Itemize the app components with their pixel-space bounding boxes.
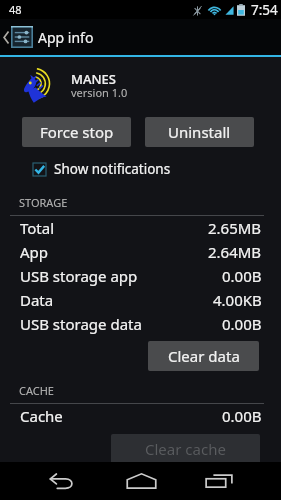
button[interactable]: Back <box>0 19 281 55</box>
staticText: Cache <box>20 406 63 426</box>
staticText: App info <box>38 28 94 47</box>
staticText: Force stop <box>40 122 114 142</box>
button[interactable]: App <box>20 240 262 264</box>
staticText: Clear data <box>168 346 240 366</box>
staticText: 7:54 <box>251 1 278 19</box>
button[interactable]: Home <box>117 462 165 500</box>
staticText: App <box>20 242 49 262</box>
button[interactable]: Clear data <box>148 341 259 371</box>
other: Back <box>3 31 9 44</box>
staticText: STORAGE <box>19 195 68 210</box>
staticText: Data <box>20 290 54 310</box>
button[interactable]: USB storage data <box>20 312 262 336</box>
staticText: Clear cache <box>145 439 226 459</box>
staticText: MANES <box>71 70 116 88</box>
staticText: 0.00B <box>222 266 262 286</box>
staticText: CACHE <box>19 383 54 398</box>
button[interactable]: Clear cache <box>111 434 260 464</box>
staticText: 48 <box>9 2 22 17</box>
staticText: 4.00KB <box>213 290 262 310</box>
staticText: 2.64MB <box>208 242 262 262</box>
staticText: Uninstall <box>168 122 231 142</box>
button[interactable]: Back <box>38 462 86 500</box>
button[interactable]: Show notifications <box>33 160 171 178</box>
button[interactable]: Cache <box>20 404 262 428</box>
staticText: USB storage app <box>20 266 138 286</box>
button[interactable]: Uninstall <box>145 117 254 147</box>
button[interactable]: Force stop <box>22 117 131 147</box>
staticText: 0.00B <box>222 406 262 426</box>
button[interactable]: Total <box>20 216 262 240</box>
staticText: Total <box>20 218 55 238</box>
staticText: USB storage data <box>20 314 142 334</box>
button[interactable]: USB storage app <box>20 264 262 288</box>
staticText: 0.00B <box>222 314 262 334</box>
staticText: Show notifications <box>54 160 171 178</box>
button[interactable]: Data <box>20 288 262 312</box>
staticText: 2.65MB <box>208 218 262 238</box>
button[interactable]: Recent apps <box>195 462 243 500</box>
staticText: version 1.0 <box>71 85 128 100</box>
